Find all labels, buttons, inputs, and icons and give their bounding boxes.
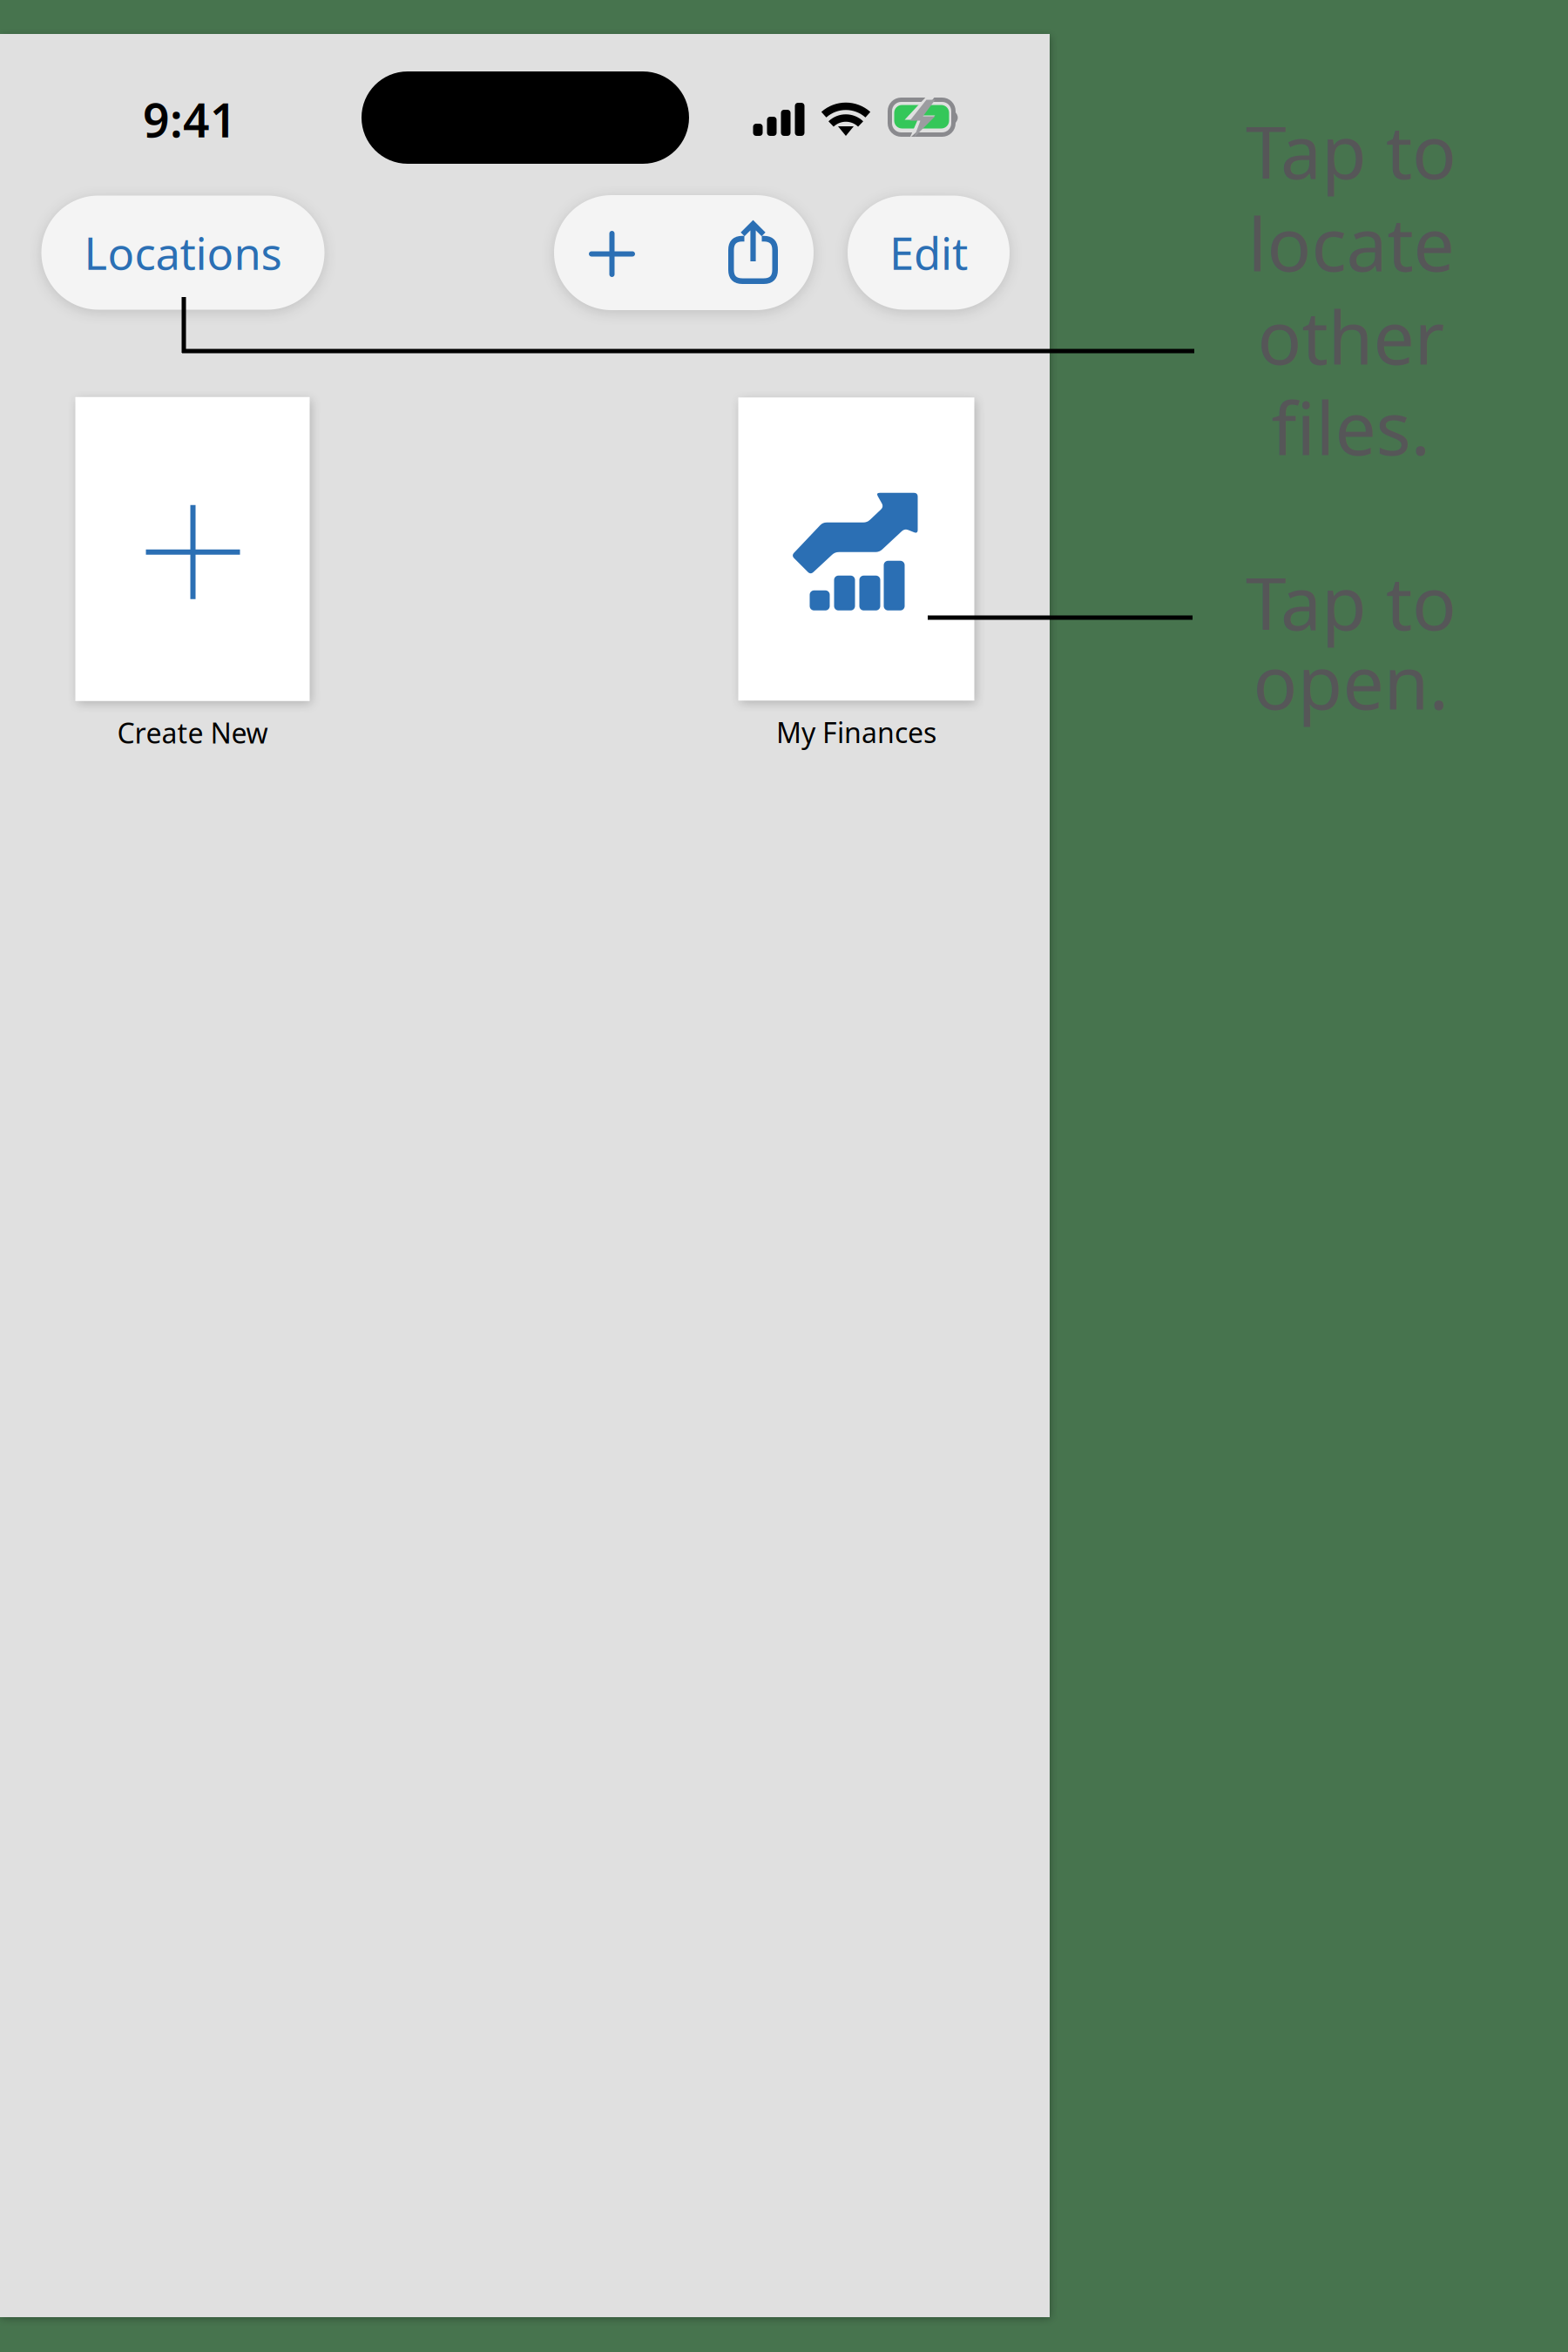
button[interactable]: Create New: [75, 402, 310, 747]
staticText: open.: [1253, 633, 1449, 730]
staticText: Tap to: [1246, 553, 1456, 650]
staticText: Locations: [84, 223, 282, 282]
staticText: Tap to: [1246, 102, 1456, 199]
button[interactable]: Locations: [41, 196, 324, 310]
staticText: Edit: [889, 223, 968, 282]
staticText: files.: [1271, 378, 1431, 475]
staticText: My Finances: [776, 714, 936, 751]
staticText: locate: [1248, 194, 1454, 292]
staticText: Create New: [117, 714, 268, 751]
button[interactable]: Edit: [848, 196, 1010, 310]
staticText: 9:41: [143, 89, 237, 150]
button[interactable]: New and Share: [554, 195, 814, 310]
staticText: other: [1257, 288, 1445, 385]
button[interactable]: My Finances: [738, 402, 974, 746]
